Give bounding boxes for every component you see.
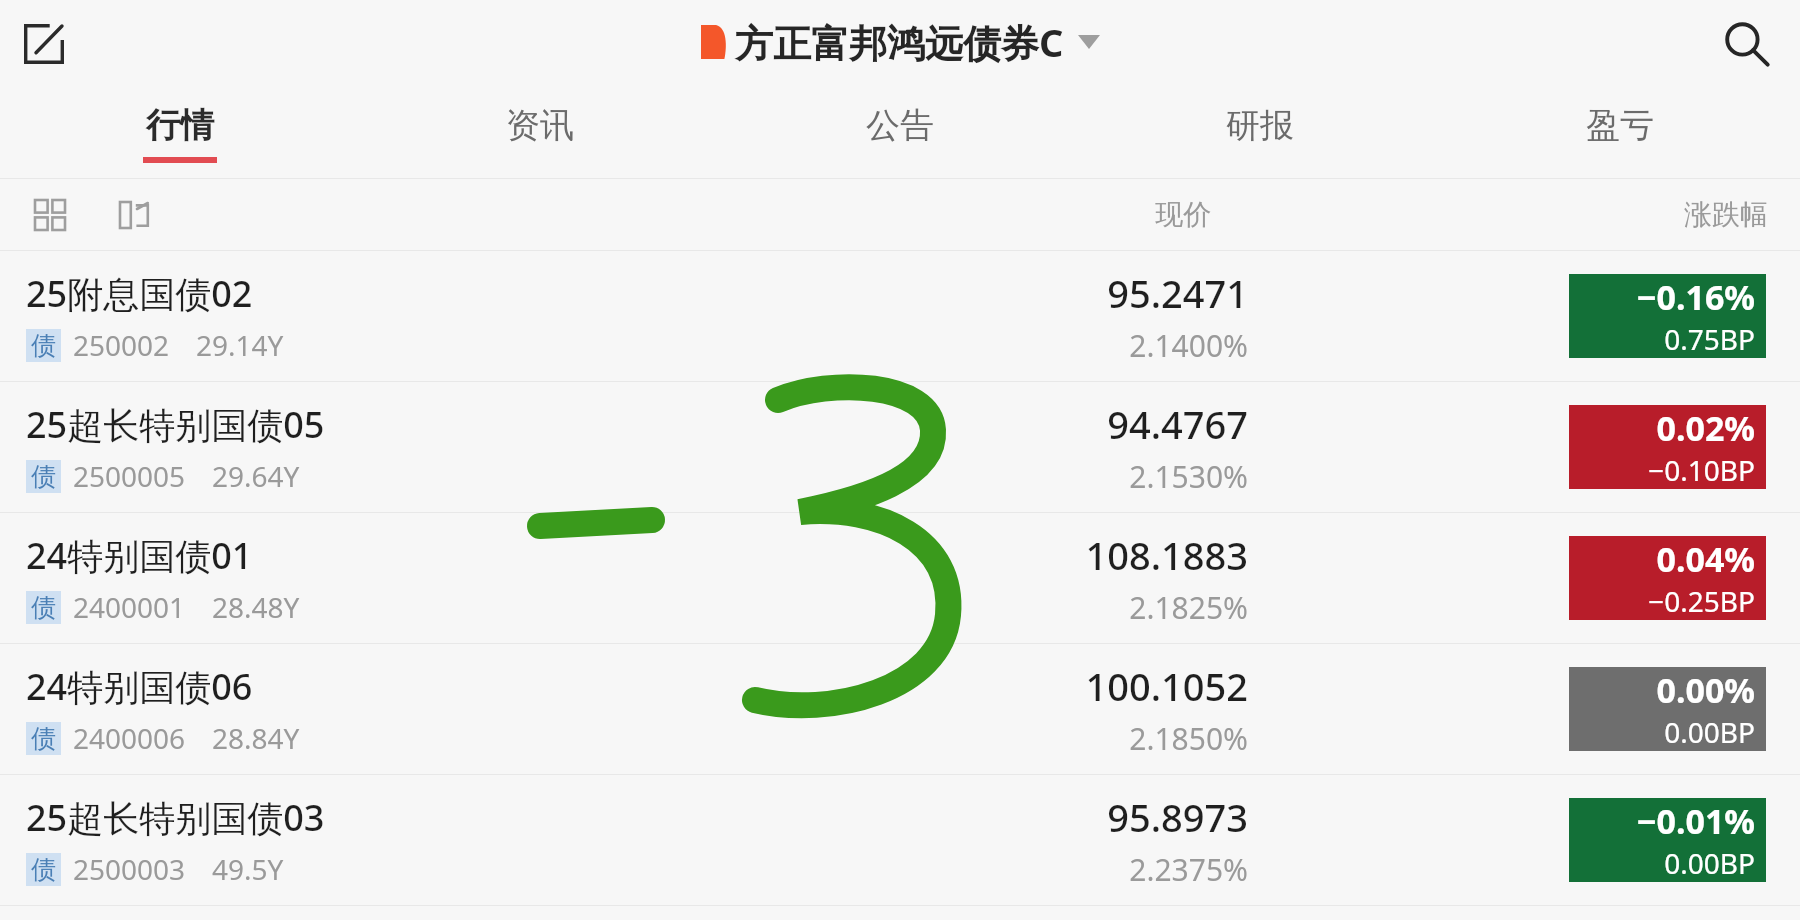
button[interactable]: 25超长特别国债03 (0, 775, 1800, 905)
staticText: 债 (31, 854, 56, 885)
staticText: 49.5Y (212, 850, 284, 888)
staticText: 方正富邦鸿远债券C (735, 16, 1064, 68)
button[interactable]: Edit (14, 14, 74, 74)
staticText: 29.64Y (212, 457, 300, 495)
staticText: 25附息国债02 (26, 269, 253, 318)
staticText: −0.01% (1636, 798, 1755, 844)
staticText: 24特别国债01 (26, 531, 253, 580)
button[interactable]: 资讯 (360, 88, 720, 178)
staticText: 29.14Y (196, 326, 284, 364)
button[interactable]: Grid view (22, 187, 78, 243)
staticText: 行情 (146, 104, 214, 147)
button[interactable]: 研报 (1080, 88, 1440, 178)
staticText: 95.2471 (1107, 267, 1248, 319)
button[interactable]: 盈亏 (1440, 88, 1800, 178)
staticText: −0.25BP (1648, 582, 1755, 620)
staticText: 2400006 (73, 719, 186, 757)
staticText: 2500003 (73, 850, 186, 888)
staticText: −0.10BP (1648, 451, 1755, 489)
staticText: 2.1850% (1129, 718, 1248, 759)
staticText: 2.1530% (1129, 456, 1248, 497)
staticText: 28.84Y (212, 719, 300, 757)
button[interactable]: Search (1712, 9, 1782, 79)
staticText: 现价 (1155, 197, 1211, 232)
staticText: 2400001 (73, 588, 186, 626)
button[interactable]: 公告 (720, 88, 1080, 178)
staticText: 2.1400% (1129, 325, 1248, 366)
staticText: 盈亏 (1586, 104, 1654, 147)
staticText: 涨跌幅 (1684, 197, 1768, 232)
staticText: 250002 (73, 326, 170, 364)
staticText: 2.2375% (1129, 849, 1248, 890)
button[interactable]: 24特别国债06 (0, 644, 1800, 774)
staticText: 2.1825% (1129, 587, 1248, 628)
staticText: 公告 (866, 104, 934, 147)
staticText: 100.1052 (1085, 660, 1248, 712)
staticText: 0.00% (1656, 667, 1755, 713)
button[interactable]: 方正富邦鸿远债券C (701, 16, 1100, 68)
button[interactable]: 25附息国债02 (0, 251, 1800, 381)
staticText: 债 (31, 461, 56, 492)
button[interactable]: 24特别国债01 (0, 513, 1800, 643)
staticText: 0.02% (1656, 405, 1755, 451)
staticText: 24特别国债06 (26, 662, 253, 711)
staticText: 0.00BP (1664, 713, 1755, 751)
staticText: −0.16% (1636, 274, 1755, 320)
staticText: 94.4767 (1107, 398, 1248, 450)
staticText: 债 (31, 330, 56, 361)
staticText: 108.1883 (1085, 529, 1248, 581)
button[interactable]: 行情 (0, 88, 360, 178)
staticText: 0.00BP (1664, 844, 1755, 882)
button[interactable]: Switch layout (106, 187, 162, 243)
staticText: 研报 (1226, 104, 1294, 147)
staticText: 资讯 (506, 104, 574, 147)
staticText: 25超长特别国债05 (26, 400, 325, 449)
staticText: 28.48Y (212, 588, 300, 626)
staticText: 25超长特别国债03 (26, 793, 325, 842)
staticText: 0.75BP (1664, 320, 1755, 358)
staticText: 0.04% (1656, 536, 1755, 582)
staticText: 债 (31, 592, 56, 623)
button[interactable]: 25超长特别国债05 (0, 382, 1800, 512)
staticText: 2500005 (73, 457, 186, 495)
staticText: 债 (31, 723, 56, 754)
staticText: 95.8973 (1107, 791, 1248, 843)
